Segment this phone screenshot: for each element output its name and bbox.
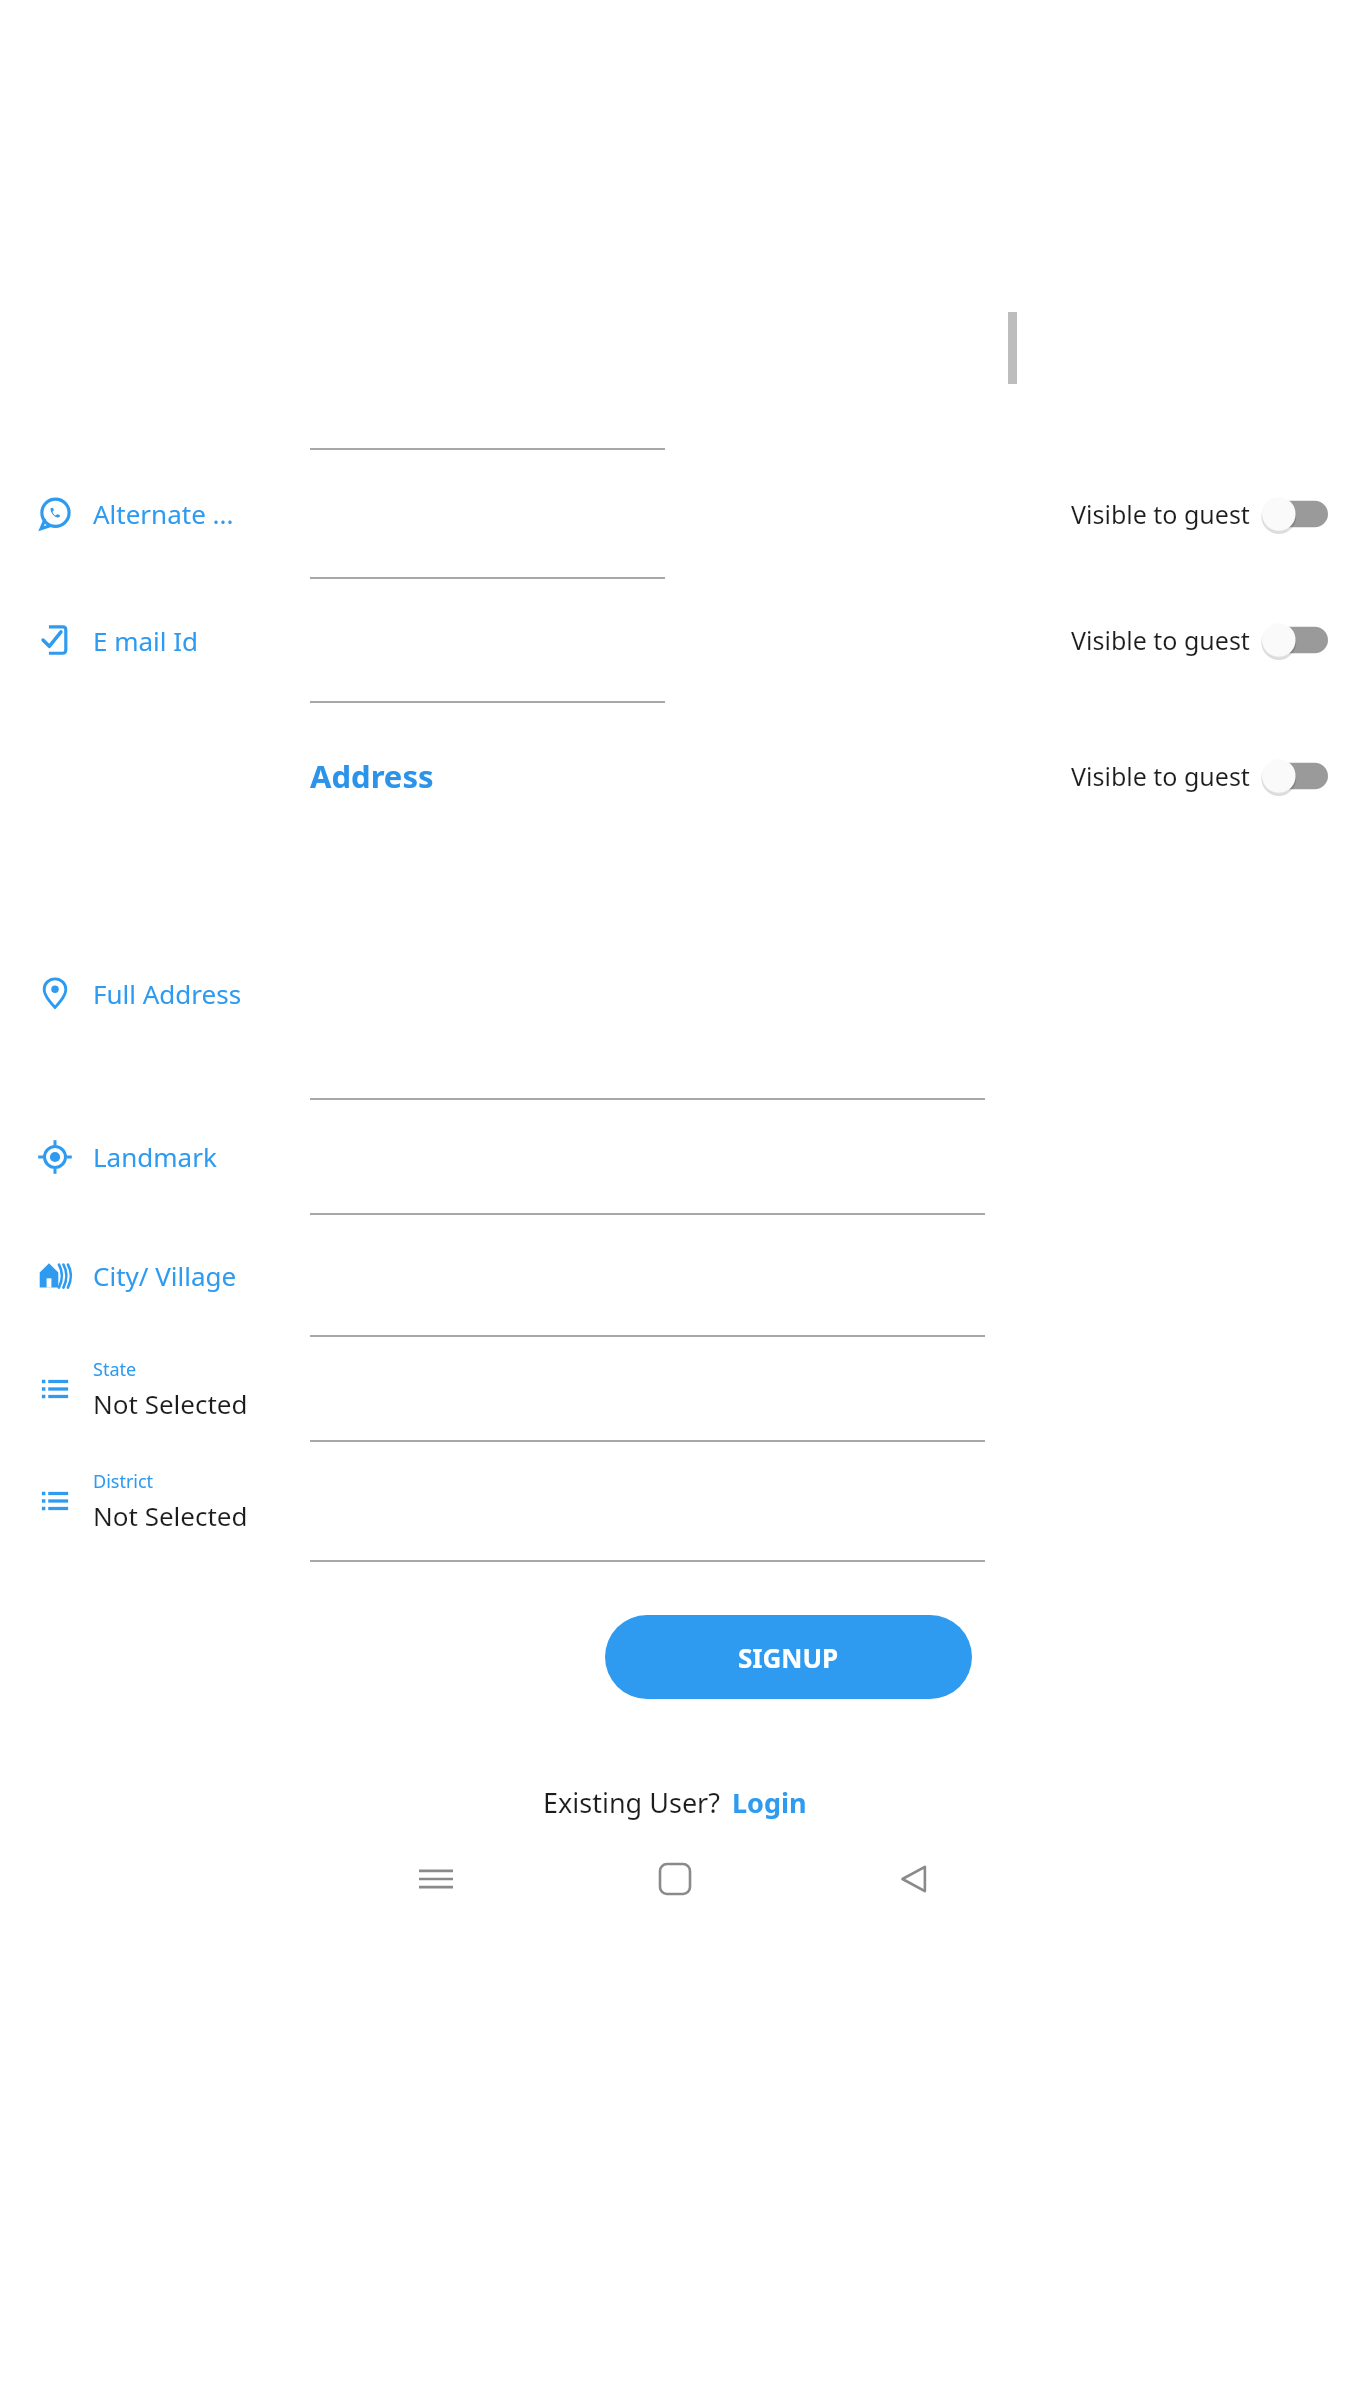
button[interactable]: Login (732, 1784, 807, 1821)
button[interactable]: Full Address (0, 943, 1350, 1043)
staticText: City/ Village (93, 1258, 237, 1293)
button[interactable]: Landmark (0, 1100, 1350, 1213)
staticText: E mail Id (93, 623, 199, 658)
button[interactable]: State (0, 1337, 1350, 1440)
button[interactable]: Visible to guest toggle (1262, 756, 1328, 796)
button[interactable]: Back (878, 1849, 950, 1909)
staticText: SIGNUP (738, 1640, 839, 1675)
staticText: Visible to guest (1071, 759, 1250, 793)
button[interactable]: City/ Village (0, 1215, 1350, 1335)
button[interactable]: Visible to guest toggle (1262, 620, 1328, 660)
staticText: District (93, 1469, 154, 1494)
button[interactable]: Recent apps (400, 1849, 472, 1909)
button[interactable]: Home (639, 1849, 711, 1909)
staticText: Landmark (93, 1139, 217, 1174)
staticText: Visible to guest (1071, 623, 1250, 657)
button[interactable]: Alternate ... (0, 450, 1350, 577)
button[interactable]: SIGNUP (605, 1615, 972, 1699)
staticText: Not Selected (93, 1386, 248, 1421)
button[interactable]: Address (310, 755, 434, 797)
staticText: Login (732, 1784, 807, 1821)
staticText: Full Address (93, 976, 242, 1011)
staticText: Alternate ... (93, 496, 234, 531)
staticText: Visible to guest (1071, 497, 1250, 531)
button[interactable]: District (0, 1442, 1350, 1560)
button[interactable]: Visible to guest toggle (1262, 494, 1328, 534)
staticText: Existing User? (543, 1784, 720, 1821)
staticText: State (93, 1357, 137, 1382)
staticText: Not Selected (93, 1498, 248, 1533)
button[interactable]: E mail Id (0, 579, 1350, 701)
